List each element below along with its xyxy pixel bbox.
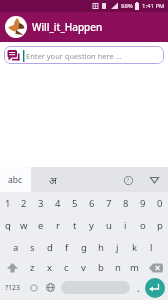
staticText: abc	[8, 174, 23, 186]
staticText: b	[98, 261, 104, 274]
staticText: t	[73, 219, 77, 232]
button[interactable]: अ	[41, 167, 65, 192]
staticText: अ	[49, 173, 57, 187]
button[interactable]	[0, 258, 24, 277]
button[interactable]	[25, 279, 42, 296]
staticText: s	[30, 241, 35, 254]
button[interactable]: i	[117, 214, 134, 236]
button[interactable]	[61, 281, 130, 294]
button[interactable]: g	[75, 236, 92, 258]
staticText: .	[137, 281, 140, 295]
staticText: 8	[123, 197, 129, 210]
button[interactable]: .	[132, 277, 144, 298]
staticText: ?	[127, 177, 130, 184]
button[interactable]: b	[92, 258, 109, 277]
button[interactable]	[146, 172, 162, 188]
button[interactable]	[144, 277, 166, 298]
staticText: r	[56, 219, 60, 232]
button[interactable]: x	[41, 258, 58, 277]
staticText: a	[13, 241, 19, 254]
button[interactable]: d	[41, 236, 58, 258]
button[interactable]: z	[24, 258, 41, 277]
button[interactable]: 1	[0, 192, 16, 214]
button[interactable]	[42, 279, 59, 296]
button[interactable]: u	[100, 214, 117, 236]
button[interactable]: 5	[66, 192, 83, 214]
button[interactable]: 3	[32, 192, 49, 214]
staticText: 5	[72, 197, 78, 210]
button[interactable]: m	[126, 258, 143, 277]
staticText: 7	[106, 197, 112, 210]
staticText: y	[89, 219, 94, 232]
staticText: 9	[140, 197, 146, 210]
button[interactable]: 7	[100, 192, 117, 214]
button[interactable]: Enter your question here ...	[4, 46, 164, 64]
button[interactable]: y	[83, 214, 100, 236]
staticText: Will_it_Happen	[32, 20, 103, 34]
staticText: m	[130, 261, 139, 274]
button[interactable]: a	[7, 236, 24, 258]
staticText: Enter your question here ...	[26, 51, 122, 61]
staticText: 1:41 PM	[142, 2, 165, 10]
button[interactable]: h	[92, 236, 109, 258]
button[interactable]: w	[16, 214, 32, 236]
staticText: 0	[157, 197, 163, 210]
button[interactable]	[143, 258, 168, 277]
button[interactable]: t	[66, 214, 83, 236]
staticText: i	[124, 219, 127, 232]
button[interactable]: ?	[120, 172, 136, 188]
staticText: w	[20, 219, 28, 232]
button[interactable]: 0	[151, 192, 168, 214]
button[interactable]: e	[32, 214, 49, 236]
button[interactable]: f	[58, 236, 75, 258]
staticText: n	[115, 261, 121, 274]
staticText: q	[5, 219, 11, 232]
button[interactable]: q	[0, 214, 16, 236]
staticText: x	[47, 261, 53, 274]
staticText: h	[98, 241, 104, 254]
button[interactable]: ?123	[0, 277, 25, 298]
button[interactable]: p	[151, 214, 168, 236]
staticText: l	[150, 241, 153, 254]
button[interactable]: c	[58, 258, 75, 277]
staticText: j	[116, 241, 119, 254]
staticText: g	[81, 241, 87, 254]
staticText: z	[30, 261, 35, 274]
staticText: e	[38, 219, 44, 232]
button[interactable]: 6	[83, 192, 100, 214]
staticText: p	[157, 219, 163, 232]
button[interactable]: v	[75, 258, 92, 277]
staticText: u	[106, 219, 112, 232]
staticText: f	[65, 241, 69, 254]
button[interactable]: 8	[117, 192, 134, 214]
button[interactable]	[5, 16, 27, 38]
button[interactable]: j	[109, 236, 126, 258]
staticText: 3	[38, 197, 44, 210]
button[interactable]: 4	[49, 192, 66, 214]
staticText: ?123	[5, 283, 21, 293]
staticText: d	[47, 241, 53, 254]
staticText: v	[81, 261, 86, 274]
staticText: 2	[21, 197, 27, 210]
staticText: o	[140, 219, 146, 232]
button[interactable]: k	[126, 236, 143, 258]
staticText: 4	[55, 197, 61, 210]
button[interactable]: r	[49, 214, 66, 236]
button[interactable]: 9	[134, 192, 151, 214]
button[interactable]: 2	[16, 192, 32, 214]
button[interactable]: l	[143, 236, 160, 258]
button[interactable]: o	[134, 214, 151, 236]
button[interactable]: n	[109, 258, 126, 277]
staticText: 88%	[121, 2, 133, 10]
button[interactable]: abc	[0, 167, 31, 192]
staticText: 6	[89, 197, 95, 210]
button[interactable]: s	[24, 236, 41, 258]
staticText: 1	[5, 197, 11, 210]
staticText: k	[132, 241, 138, 254]
staticText: c	[64, 261, 69, 274]
